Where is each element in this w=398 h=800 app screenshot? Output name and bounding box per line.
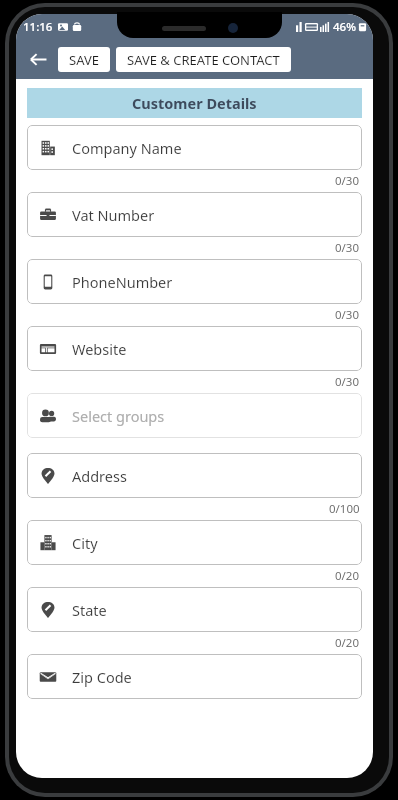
staticText: 0/30 (335, 374, 360, 390)
button[interactable]: Zip Code (27, 654, 362, 699)
button[interactable]: Select groups (27, 393, 362, 438)
button[interactable]: Address (27, 453, 362, 498)
staticText: 0/20 (335, 635, 360, 651)
button[interactable]: City (27, 520, 362, 565)
staticText: 0/20 (335, 568, 360, 584)
staticText: Company Name (72, 138, 182, 158)
button[interactable]: Vat Number (27, 192, 362, 237)
staticText: PhoneNumber (72, 272, 173, 292)
staticText: 46% (333, 19, 356, 35)
staticText: 0/100 (329, 501, 360, 517)
staticText: City (72, 533, 98, 553)
button[interactable]: Website (27, 326, 362, 371)
staticText: 0/30 (335, 173, 360, 189)
staticText: 0/30 (335, 307, 360, 323)
button[interactable]: SAVE (58, 47, 110, 72)
staticText: State (72, 600, 107, 620)
staticText: Customer Details (132, 93, 257, 113)
button[interactable]: Back (22, 43, 54, 75)
button[interactable]: State (27, 587, 362, 632)
staticText: Zip Code (72, 667, 132, 687)
button[interactable]: PhoneNumber (27, 259, 362, 304)
staticText: Address (72, 466, 127, 486)
button[interactable]: SAVE & CREATE CONTACT (116, 47, 291, 72)
staticText: Vat Number (72, 205, 155, 225)
staticText: SAVE & CREATE CONTACT (127, 51, 280, 69)
staticText: Website (72, 339, 127, 359)
button[interactable]: Company Name (27, 125, 362, 170)
staticText: SAVE (69, 51, 99, 69)
staticText: Select groups (72, 406, 165, 426)
staticText: 0/30 (335, 240, 360, 256)
staticText: 11:16 (23, 19, 53, 35)
